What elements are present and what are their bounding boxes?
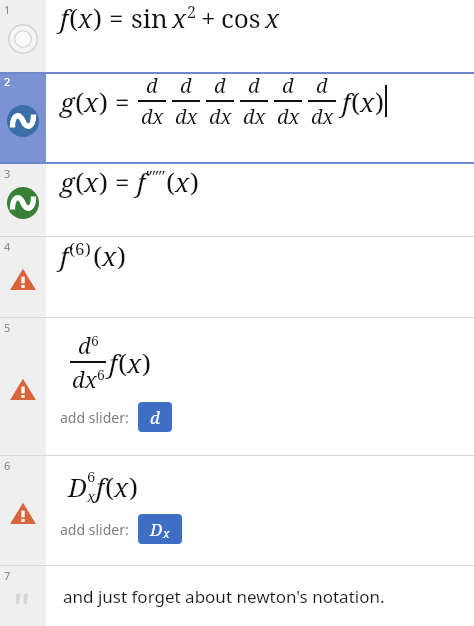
staticText: add slider: xyxy=(60,408,129,427)
staticText: 7 xyxy=(4,568,11,583)
staticText: d xyxy=(78,330,91,360)
staticText: f xyxy=(96,469,105,504)
staticText: 2 xyxy=(4,74,11,89)
staticText: + xyxy=(201,0,216,35)
staticText: g xyxy=(60,84,75,119)
staticText: x xyxy=(84,164,99,199)
staticText: ( xyxy=(75,84,84,119)
staticText: ( xyxy=(75,164,84,199)
staticText: ) xyxy=(142,345,151,380)
staticText: ) xyxy=(99,84,108,119)
staticText: d xyxy=(316,72,328,99)
staticText: d xyxy=(214,72,226,99)
staticText: x xyxy=(102,238,117,273)
staticText: x xyxy=(84,84,99,119)
button[interactable]: Expression 6 options xyxy=(0,456,474,565)
staticText: ) xyxy=(85,237,91,260)
staticText: x xyxy=(265,0,280,35)
staticText: ) xyxy=(375,84,384,119)
staticText: 6 xyxy=(4,458,11,473)
staticText: ( xyxy=(69,0,78,35)
staticText: x xyxy=(78,0,93,35)
button[interactable]: Expression 1 options xyxy=(0,0,46,72)
staticText: 6 xyxy=(97,365,105,384)
staticText: 6 xyxy=(87,466,96,486)
staticText: d xyxy=(146,72,158,99)
staticText: f xyxy=(342,84,351,119)
staticText: 4 xyxy=(4,239,11,254)
staticText: cos xyxy=(221,0,261,35)
button[interactable]: Expression 4 options xyxy=(0,237,474,317)
staticText: dx xyxy=(141,103,164,130)
staticText: dx xyxy=(175,103,198,130)
staticText: = xyxy=(115,164,130,199)
staticText: ′′′′′′ xyxy=(146,165,166,188)
staticText: x xyxy=(114,469,129,504)
staticText: dx xyxy=(277,103,300,130)
button[interactable]: Expression 7 options xyxy=(0,566,46,626)
staticText: 3 xyxy=(4,166,11,181)
staticText: ) xyxy=(93,0,102,35)
staticText: dx xyxy=(243,103,266,130)
staticText: ( xyxy=(69,237,75,260)
staticText: g xyxy=(60,164,75,199)
button[interactable]: Expression 3 options xyxy=(0,164,474,236)
staticText: ) xyxy=(117,238,126,273)
staticText: ( xyxy=(166,164,175,199)
staticText: 5 xyxy=(4,320,11,335)
button[interactable]: Expression 6 options xyxy=(0,456,46,565)
button[interactable]: Expression 4 options xyxy=(0,237,46,317)
staticText: d xyxy=(248,72,260,99)
staticText: x xyxy=(172,0,187,35)
staticText: ) xyxy=(129,469,138,504)
staticText: add slider: xyxy=(60,520,129,539)
staticText: 2 xyxy=(187,1,196,23)
staticText: dx xyxy=(209,103,232,130)
staticText: 1 xyxy=(4,2,11,17)
staticText: x xyxy=(163,525,170,541)
staticText: x xyxy=(360,84,375,119)
staticText: D xyxy=(150,518,163,541)
staticText: ( xyxy=(93,238,102,273)
staticText: x xyxy=(175,164,190,199)
staticText: dx xyxy=(72,364,97,394)
staticText: 6 xyxy=(91,331,99,350)
staticText: 6 xyxy=(75,237,85,260)
button[interactable]: D xyxy=(138,514,182,544)
button[interactable]: Expression 5 options xyxy=(0,318,474,455)
staticText: ( xyxy=(105,469,114,504)
button[interactable]: Expression 2 options xyxy=(0,72,474,164)
button[interactable]: Expression 2 options xyxy=(0,72,46,164)
staticText: D xyxy=(68,469,87,504)
staticText: ) xyxy=(99,164,108,199)
staticText: d xyxy=(180,72,192,99)
staticText: x xyxy=(87,486,96,506)
staticText: = xyxy=(115,84,130,119)
staticText: ( xyxy=(351,84,360,119)
staticText: dx xyxy=(311,103,334,130)
staticText: d xyxy=(150,406,160,429)
button[interactable]: Expression 1 options xyxy=(0,0,474,72)
staticText: sin xyxy=(131,0,168,35)
button[interactable]: Expression 7 options xyxy=(0,566,474,626)
staticText: x xyxy=(127,345,142,380)
button[interactable]: Expression 5 options xyxy=(0,318,46,455)
staticText: d xyxy=(282,72,294,99)
staticText: and just forget about newton's notation. xyxy=(63,585,385,608)
staticText: = xyxy=(109,0,124,35)
staticText: ) xyxy=(190,164,199,199)
staticText: f xyxy=(60,0,69,35)
button[interactable]: Expression 3 options xyxy=(0,164,46,236)
staticText: ( xyxy=(118,345,127,380)
staticText: f xyxy=(109,345,118,380)
staticText: f xyxy=(137,164,146,199)
button[interactable]: d xyxy=(138,402,172,432)
staticText: f xyxy=(60,238,69,273)
